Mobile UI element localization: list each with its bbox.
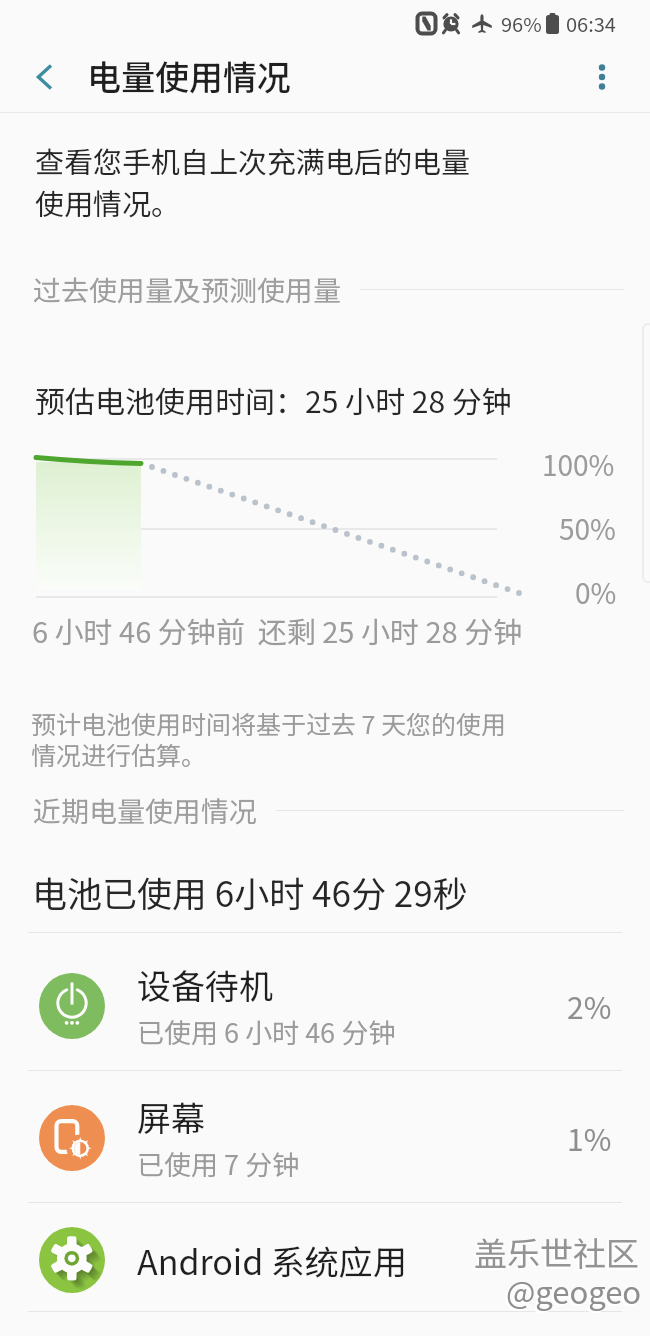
- staticText: 盖乐世社区: [472, 1230, 637, 1278]
- button[interactable]: More options: [578, 55, 626, 103]
- staticText: 0%: [575, 572, 617, 613]
- staticText: 96%: [501, 9, 542, 38]
- staticText: 近期电量使用情况: [33, 790, 258, 830]
- staticText: 已使用 6 小时 46 分钟: [137, 1012, 396, 1051]
- staticText: 2%: [567, 984, 612, 1027]
- staticText: 预计电池使用时间将基于过去 7 天您的使用 情况进行估算。: [31, 705, 507, 772]
- staticText: 过去使用量及预测使用量: [33, 269, 342, 309]
- staticText: @geogeo: [506, 1268, 642, 1313]
- button[interactable]: Android 系统应用: [0, 1206, 650, 1314]
- staticText: 电池已使用 6小时 46分 29秒: [32, 866, 468, 917]
- staticText: 设备待机: [137, 960, 273, 1009]
- button[interactable]: Back: [20, 54, 70, 104]
- staticText: 06:34: [566, 9, 616, 38]
- staticText: 50%: [559, 508, 616, 549]
- staticText: 盖乐世社区: [474, 1228, 639, 1276]
- staticText: 已使用 7 分钟: [137, 1144, 300, 1183]
- staticText: 1%: [567, 1116, 612, 1159]
- staticText: @geogeo: [504, 1270, 640, 1315]
- staticText: 6 小时 46 分钟前 还剩 25 小时 28 分钟: [32, 609, 523, 651]
- button[interactable]: 设备待机: [0, 937, 650, 1074]
- staticText: 查看您手机自上次充满电后的电量 使用情况。: [35, 139, 471, 223]
- staticText: Android 系统应用: [137, 1236, 407, 1285]
- staticText: 电量使用情况: [87, 51, 291, 100]
- staticText: 100%: [542, 444, 615, 485]
- staticText: 屏幕: [137, 1092, 205, 1141]
- staticText: 预估电池使用时间：25 小时 28 分钟: [35, 378, 512, 421]
- button[interactable]: 屏幕: [0, 1072, 650, 1203]
